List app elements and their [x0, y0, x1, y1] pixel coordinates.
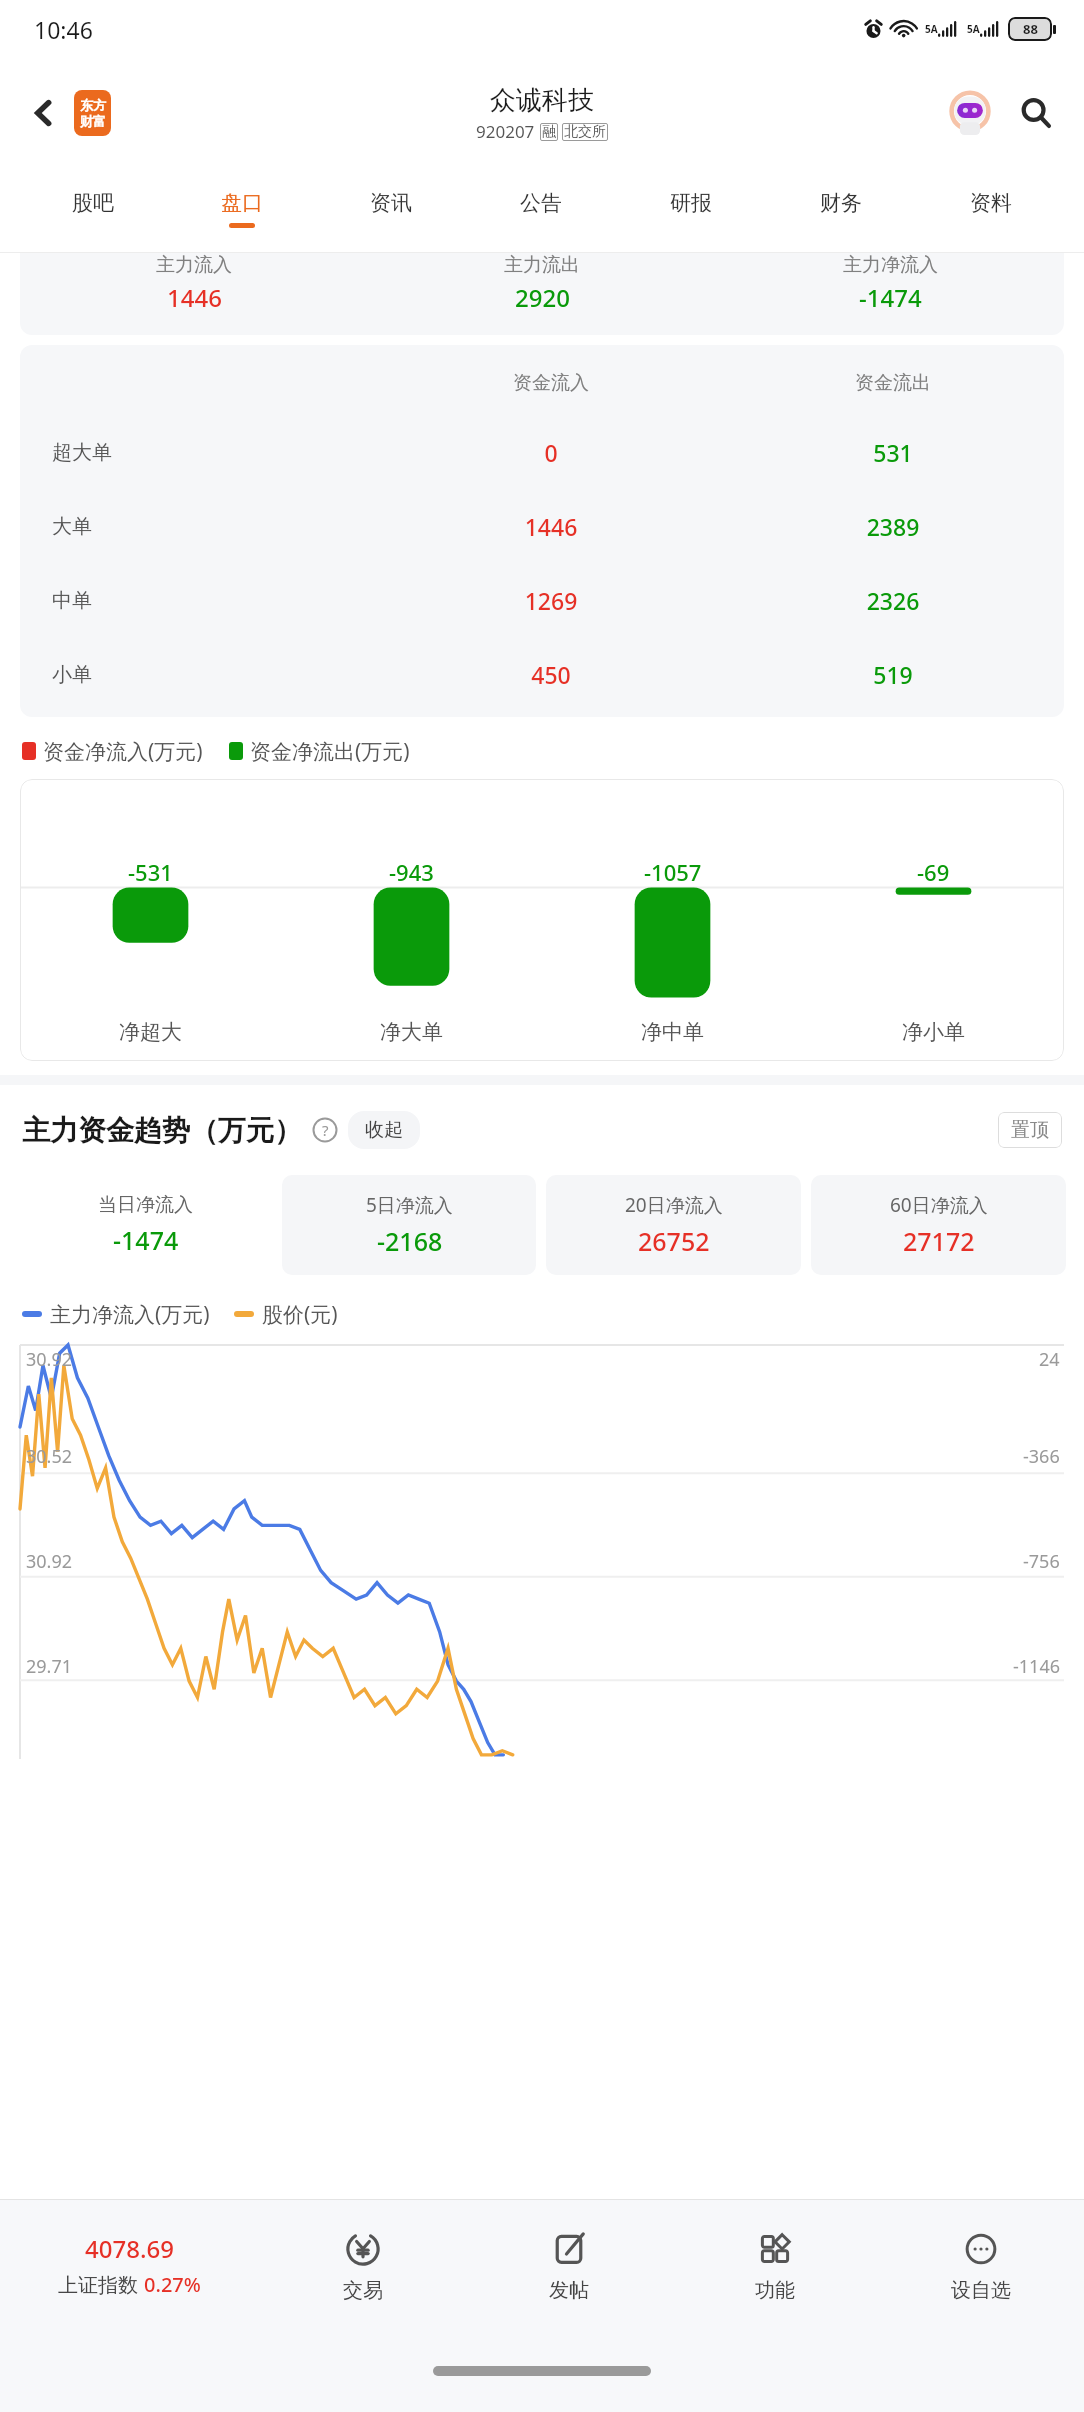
staticText: 盘口 [221, 190, 263, 216]
staticText: 主力流出 [504, 253, 580, 277]
button[interactable]: Assistant [942, 85, 998, 141]
button[interactable]: 资料 [916, 168, 1066, 250]
staticText: -756 [1023, 1549, 1060, 1574]
staticText: -531 [128, 857, 173, 887]
button[interactable]: 交易 [259, 2200, 466, 2330]
button[interactable]: 置顶 [998, 1112, 1062, 1148]
staticText: 450 [380, 659, 722, 690]
staticText: 5A [925, 22, 938, 36]
staticText: 净大单 [380, 1019, 443, 1045]
staticText: 0.27% [144, 2271, 201, 2298]
staticText: -1146 [1013, 1654, 1060, 1679]
staticText: 主力净流入(万元) [50, 1300, 210, 1329]
button[interactable]: 盘口 [167, 168, 316, 250]
staticText: 东方 [80, 97, 106, 113]
staticText: 资金净流入(万元) [43, 737, 203, 766]
button[interactable]: -531 [20, 779, 1064, 1061]
button[interactable]: 当日净流入 [18, 1175, 272, 1275]
staticText: 10:46 [34, 14, 93, 45]
button[interactable]: 超大单 [20, 415, 1064, 489]
staticText: 净超大 [119, 1019, 182, 1045]
staticText: 当日净流入 [98, 1193, 193, 1217]
button[interactable]: 主力流出 [368, 253, 716, 314]
staticText: -1474 [859, 281, 922, 314]
button[interactable]: 功能 [672, 2200, 878, 2330]
button[interactable]: 设自选 [878, 2200, 1084, 2330]
staticText: 26752 [638, 1224, 710, 1258]
button[interactable]: 30.92 [20, 1339, 1064, 1759]
staticText: 30.92 [26, 1549, 73, 1574]
staticText: 4078.69 [85, 2232, 174, 2265]
staticText: 0 [380, 437, 722, 468]
staticText: 主力资金趋势（万元） [22, 1113, 302, 1148]
button[interactable]: 研报 [616, 168, 766, 250]
button[interactable]: 小单 [20, 637, 1064, 711]
button[interactable]: Help [312, 1117, 338, 1143]
staticText: 60日净流入 [890, 1192, 988, 1218]
staticText: 收起 [365, 1118, 403, 1142]
button[interactable]: 中单 [20, 563, 1064, 637]
staticText: 中单 [52, 588, 92, 613]
staticText: 资金净流出(万元) [250, 737, 410, 766]
staticText: 财务 [820, 190, 862, 216]
button[interactable]: Back [18, 87, 70, 139]
staticText: 5日净流入 [366, 1192, 453, 1218]
staticText: 大单 [52, 514, 92, 539]
staticText: 1446 [380, 511, 722, 542]
staticText: 5A [967, 22, 980, 36]
staticText: 公告 [520, 190, 562, 216]
staticText: 超大单 [52, 440, 112, 465]
staticText: 上证指数 [58, 2271, 144, 2298]
button[interactable]: 4078.69 [0, 2232, 259, 2298]
staticText: 24 [1039, 1347, 1060, 1372]
button[interactable]: 主力流入 [20, 253, 368, 314]
button[interactable]: 股吧 [18, 168, 167, 250]
button[interactable]: 60日净流入 [811, 1175, 1066, 1275]
button[interactable]: 收起 [348, 1111, 420, 1149]
button[interactable]: 发帖 [466, 2200, 672, 2330]
staticText: 功能 [755, 2278, 795, 2303]
staticText: -69 [917, 857, 950, 887]
button[interactable]: East Money [74, 90, 111, 136]
staticText: 资金流出 [722, 371, 1064, 395]
staticText: -1057 [644, 857, 702, 887]
button[interactable]: Search [1008, 85, 1064, 141]
button[interactable]: 5日净流入 [282, 1175, 536, 1275]
staticText: ? [322, 1120, 329, 1140]
staticText: -366 [1023, 1444, 1060, 1469]
staticText: 置顶 [1011, 1118, 1049, 1142]
staticText: 2389 [722, 511, 1064, 542]
staticText: 发帖 [549, 2278, 589, 2303]
staticText: 研报 [670, 190, 712, 216]
staticText: 1446 [167, 281, 222, 314]
button[interactable]: 公告 [466, 168, 616, 250]
staticText: 财富 [80, 113, 106, 129]
staticText: -1474 [113, 1223, 179, 1257]
button[interactable]: 资讯 [316, 168, 466, 250]
staticText: 1269 [380, 585, 722, 616]
staticText: 88 [1023, 20, 1038, 38]
staticText: 北交所 [564, 123, 606, 141]
button[interactable]: 主力净流入 [716, 253, 1064, 314]
staticText: 主力净流入 [843, 253, 938, 277]
button[interactable]: 财务 [766, 168, 916, 250]
staticText: 30.52 [26, 1444, 73, 1469]
staticText: 小单 [52, 662, 92, 687]
staticText: 531 [722, 437, 1064, 468]
staticText: 29.71 [26, 1654, 73, 1679]
staticText: 融 [542, 123, 556, 141]
staticText: 净中单 [641, 1019, 704, 1045]
staticText: 资金流入 [380, 371, 722, 395]
staticText: 主力流入 [156, 253, 232, 277]
staticText: 股价(元) [262, 1300, 338, 1329]
staticText: 股吧 [72, 190, 114, 216]
staticText: 交易 [343, 2278, 383, 2303]
button[interactable]: 20日净流入 [546, 1175, 801, 1275]
staticText: 资讯 [370, 190, 412, 216]
staticText: -2168 [377, 1224, 443, 1258]
staticText: 众诚科技 [490, 84, 594, 117]
button[interactable]: 大单 [20, 489, 1064, 563]
staticText: 2326 [722, 585, 1064, 616]
staticText: 资料 [970, 190, 1012, 216]
staticText: 920207 [476, 120, 535, 143]
